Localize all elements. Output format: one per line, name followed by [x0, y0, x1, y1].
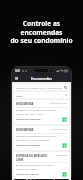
staticText: RETIRA DO PORTAO — [16, 173, 62, 176]
staticText: Cadastrar encomenda — [26, 179, 57, 180]
staticText: ENCOMENDA — [16, 102, 49, 106]
staticText: Todos — [16, 94, 65, 97]
staticText: ENTREGA DO MERCADO LIVRE — [16, 154, 55, 161]
staticText: Buscar por unidade, bloco, encomenda — [16, 86, 64, 89]
staticText: 9:41 — [15, 69, 21, 73]
staticText: Retirado por: Marlo Soares — [16, 113, 44, 116]
staticText: RETIRA DO MORADOR — [16, 144, 62, 147]
button[interactable]: Ver QR code — [62, 143, 67, 148]
staticText: Encomendas — [31, 76, 53, 81]
staticText: RETIRADA DE ENCOMENDA NO BLOCO — [16, 135, 56, 138]
button[interactable]: Cadastrar encomenda — [14, 179, 69, 180]
staticText: 12/04/2024 14:02 — [49, 102, 67, 105]
staticText: RETIRADA DE ENCOMENDA NO BLOCO — [16, 109, 56, 112]
staticText: 10/04/2024 — [55, 154, 67, 157]
button[interactable]: ENTREGA DO MERCADO LIVRE — [14, 152, 69, 179]
staticText: RETIRADA DE ENCOMENDA 17:28 EM — [16, 164, 54, 167]
staticText: RETIRA DO MORADOR — [16, 118, 62, 121]
button[interactable]: ENCOMENDA — [14, 126, 69, 150]
staticText: 11/04/2024 09:47 — [49, 128, 67, 131]
button[interactable]: Todos — [14, 92, 69, 98]
staticText: Controle as encomendas do seu condomínio — [6, 19, 77, 45]
button[interactable]: Buscar por unidade, bloco, encomenda — [14, 84, 69, 90]
button[interactable]: Ver QR code — [62, 172, 67, 177]
staticText: Retirado por: Ana da encomenda — [16, 139, 50, 142]
button[interactable]: Ver QR code — [62, 117, 67, 122]
button[interactable]: Menu — [14, 76, 19, 81]
staticText: Retirado por: Antonio — [16, 168, 39, 171]
staticText: ENCOMENDA — [16, 128, 49, 132]
button[interactable]: ENCOMENDA — [14, 100, 69, 124]
